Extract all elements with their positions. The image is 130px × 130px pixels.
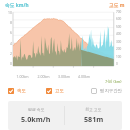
button[interactable]: 고도 <box>46 88 64 94</box>
staticText: 평지구간만 <box>100 88 122 94</box>
staticText: 4.00km <box>74 74 94 79</box>
staticText: 0 <box>10 61 12 66</box>
button[interactable]: 평지구간만 <box>91 88 122 94</box>
staticText: 8 <box>10 20 12 25</box>
staticText: 고도 m <box>109 2 125 9</box>
staticText: 10 <box>8 10 12 15</box>
staticText: 200 <box>116 47 122 51</box>
staticText: 최고 고도 <box>85 107 102 112</box>
button[interactable]: 평균 속도 <box>8 101 64 124</box>
staticText: 100 <box>116 55 122 59</box>
button[interactable]: 속도 <box>8 88 26 94</box>
staticText: 600 <box>116 17 122 21</box>
button[interactable]: 최고 고도 <box>65 101 122 124</box>
staticText: 3.00km <box>54 74 74 79</box>
staticText: 581m <box>84 114 104 124</box>
button[interactable]: 평균 속도 <box>8 101 122 130</box>
staticText: 6 <box>10 30 12 35</box>
staticText: 거리 (km) <box>105 79 122 84</box>
staticText: 0 <box>116 62 118 66</box>
staticText: 속도 <box>17 88 26 94</box>
staticText: 400 <box>116 32 122 36</box>
staticText: 300 <box>116 40 122 44</box>
staticText: 고도 <box>55 88 64 94</box>
staticText: 속도 km/h <box>5 2 29 9</box>
staticText: 1.00km <box>12 74 33 79</box>
staticText: 4 <box>10 41 12 46</box>
staticText: 500 <box>116 25 122 29</box>
staticText: 2 <box>10 51 12 56</box>
staticText: 평균 속도 <box>28 107 45 112</box>
staticText: 5.0km/h <box>21 114 51 124</box>
staticText: 2.00km <box>33 74 54 79</box>
staticText: 700 <box>116 10 122 14</box>
